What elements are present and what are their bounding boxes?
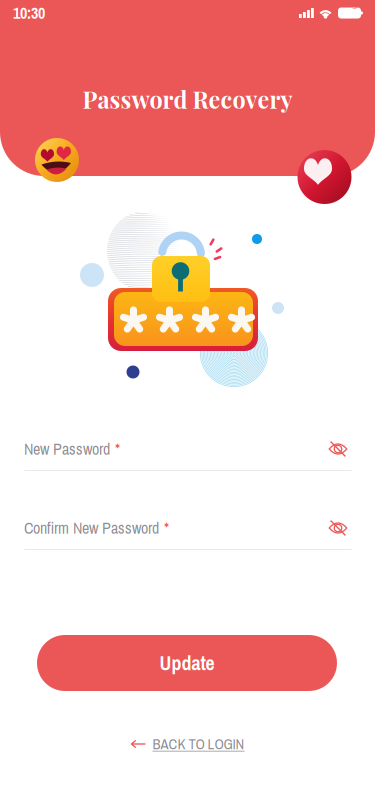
staticText: Password Recovery xyxy=(82,83,292,114)
button[interactable]: Show password xyxy=(324,516,352,540)
button[interactable]: BACK TO LOGIN xyxy=(124,728,250,760)
staticText: BACK TO LOGIN xyxy=(152,734,244,754)
staticText: Update xyxy=(159,649,214,676)
staticText: 10:30 xyxy=(13,2,45,24)
staticText: * xyxy=(164,517,169,539)
staticText: Confirm New Password xyxy=(24,517,159,539)
staticText: * xyxy=(115,438,120,460)
button[interactable]: Show password xyxy=(324,437,352,461)
button[interactable]: Update xyxy=(37,635,337,691)
staticText: New Password xyxy=(24,438,110,460)
